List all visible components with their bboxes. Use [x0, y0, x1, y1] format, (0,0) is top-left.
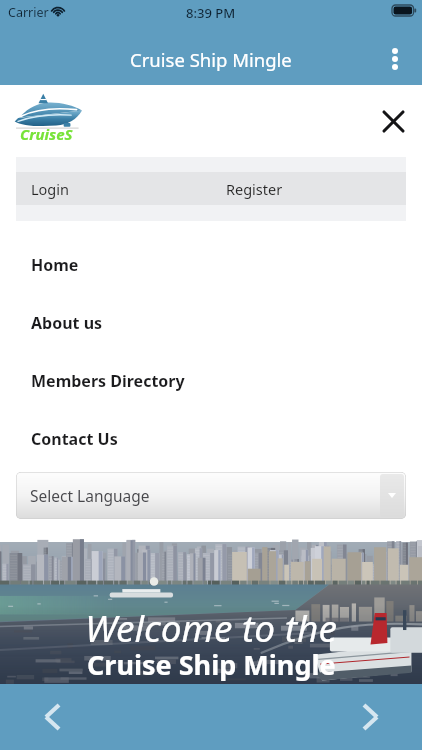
button[interactable]: Register — [226, 172, 406, 205]
staticText: Cruise Ship Mingle — [130, 47, 292, 72]
staticText: About us — [31, 312, 103, 334]
staticText: Home — [31, 254, 79, 276]
button[interactable]: More options — [374, 38, 416, 80]
staticText: 8:39 PM — [186, 4, 236, 22]
button[interactable]: Close menu — [372, 100, 415, 143]
button[interactable]: Previous — [32, 697, 72, 737]
staticText: Cruise Ship Mingle — [87, 646, 336, 683]
staticText: Carrier — [8, 4, 49, 21]
staticText: CruiseS — [20, 124, 73, 144]
button[interactable]: Login — [16, 172, 226, 205]
button[interactable]: Contact Us — [0, 410, 422, 468]
staticText: Login — [31, 179, 69, 199]
button[interactable]: Select Language — [16, 472, 406, 519]
button[interactable]: Next — [350, 697, 390, 737]
staticText: Welcome to the — [85, 602, 337, 652]
staticText: Contact Us — [31, 428, 118, 450]
button[interactable]: Members Directory — [0, 352, 422, 410]
staticText: Members Directory — [31, 370, 185, 392]
staticText: Select Language — [30, 485, 150, 506]
button[interactable]: About us — [0, 294, 422, 352]
button[interactable]: Home — [0, 236, 422, 294]
staticText: Register — [226, 179, 283, 199]
